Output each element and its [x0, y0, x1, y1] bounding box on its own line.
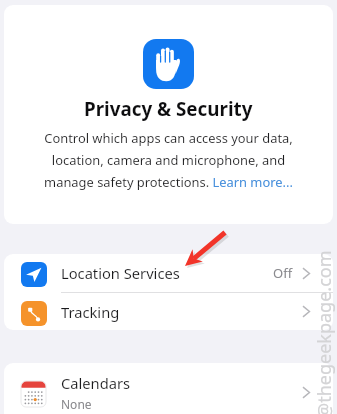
staticText: Location Services	[61, 263, 180, 283]
staticText: Calendars	[61, 373, 131, 393]
button[interactable]: Tracking	[4, 293, 333, 330]
staticText: @thegeekpage.com	[312, 250, 337, 414]
staticText: Privacy & Security	[84, 96, 253, 122]
button[interactable]: Location Services	[4, 254, 333, 293]
staticText: Off	[273, 264, 293, 282]
staticText: Control which apps can access your data,…	[44, 129, 293, 191]
button[interactable]: Calendars	[4, 363, 333, 411]
staticText: Tracking	[61, 302, 120, 322]
button[interactable]: Learn more about Privacy & Security	[212, 175, 296, 193]
staticText: None	[61, 396, 92, 411]
